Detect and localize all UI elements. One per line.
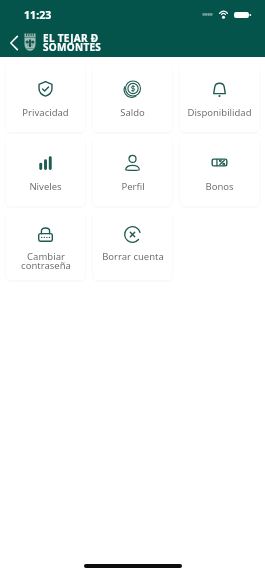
- staticText: EL TEJAR Ð SOMONTES: [43, 31, 102, 54]
- staticText: 11:23: [24, 8, 52, 22]
- staticText: Privacidad: [22, 106, 69, 119]
- staticText: Perfil: [121, 180, 145, 193]
- button[interactable]: Cambiar contraseña: [6, 210, 85, 280]
- staticText: Saldo: [120, 106, 145, 119]
- button[interactable]: Saldo: [93, 62, 172, 132]
- staticText: Niveles: [29, 180, 62, 193]
- button[interactable]: Niveles: [6, 136, 85, 206]
- staticText: Borrar cuenta: [102, 250, 164, 272]
- button[interactable]: Privacidad: [6, 62, 85, 132]
- staticText: Cambiar contraseña: [21, 250, 71, 272]
- button[interactable]: Borrar cuenta: [93, 210, 172, 280]
- button[interactable]: Disponibilidad: [180, 62, 259, 132]
- staticText: Bonos: [205, 180, 234, 193]
- button[interactable]: Perfil: [93, 136, 172, 206]
- button[interactable]: Back: [3, 32, 24, 53]
- button[interactable]: Bonos: [180, 136, 259, 206]
- staticText: Disponibilidad: [187, 106, 252, 119]
